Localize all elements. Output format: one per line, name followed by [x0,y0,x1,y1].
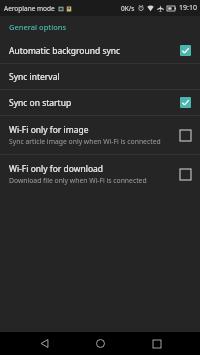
button[interactable]: Recent apps [144,332,170,355]
staticText: Automatic background sync [9,45,121,57]
button[interactable]: Sync interval [0,64,200,89]
staticText: Aeroplane mode [4,4,55,13]
staticText: Wi-Fi only for download [9,163,104,175]
button[interactable]: Sync on startup [0,90,200,115]
button[interactable]: Wi-Fi only for download [0,155,200,193]
staticText: Sync article image only when Wi-Fi is co… [9,137,161,146]
staticText: General options [9,22,67,32]
staticText: Sync interval [9,71,60,83]
staticText: Download file only when Wi-Fi is connect… [9,176,147,185]
staticText: 0K/s [121,4,135,13]
button[interactable]: Automatic background sync [0,38,200,63]
staticText: Wi-Fi only for image [9,124,89,136]
button[interactable]: Unchecked [179,168,192,181]
button[interactable]: Wi-Fi only for image [0,116,200,154]
button[interactable]: Unchecked [179,129,192,142]
staticText: 19:10 [179,3,197,13]
button[interactable]: Checked [179,96,192,109]
button[interactable]: Back [31,332,57,355]
staticText: Sync on startup [9,97,72,109]
button[interactable]: Checked [179,44,192,57]
button[interactable]: Home [87,332,113,355]
